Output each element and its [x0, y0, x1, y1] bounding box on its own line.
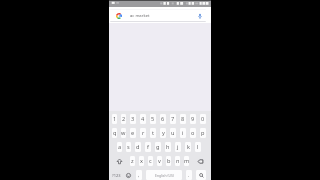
button[interactable]: y	[160, 128, 166, 138]
staticText: r	[142, 129, 145, 137]
button[interactable]: Backspace	[193, 156, 206, 166]
button[interactable]: s	[126, 142, 131, 152]
button[interactable]: h	[165, 142, 171, 152]
button[interactable]: k	[185, 142, 191, 152]
staticText: c	[149, 157, 152, 165]
button[interactable]: Search	[196, 170, 206, 180]
staticText: .	[188, 172, 190, 179]
button[interactable]: t	[150, 128, 156, 138]
staticText: s	[127, 143, 130, 151]
button[interactable]: 1	[112, 114, 117, 124]
staticText: d	[136, 143, 140, 151]
staticText: o	[191, 129, 195, 137]
button[interactable]: 5	[150, 114, 156, 124]
button[interactable]: p	[200, 128, 206, 138]
staticText: l	[197, 143, 199, 151]
staticText: ac market	[130, 13, 150, 19]
staticText: 3	[131, 115, 135, 123]
staticText: w	[121, 129, 126, 137]
staticText: 6	[161, 115, 165, 123]
button[interactable]: o	[190, 128, 196, 138]
staticText: v	[158, 157, 161, 165]
button[interactable]: ?123	[112, 170, 121, 180]
button[interactable]: x	[139, 156, 144, 166]
staticText: 0	[201, 115, 205, 123]
button[interactable]: z	[130, 156, 135, 166]
staticText: x	[140, 157, 143, 165]
staticText: e	[131, 129, 135, 137]
button[interactable]: 6	[160, 114, 166, 124]
button[interactable]: 0	[200, 114, 206, 124]
staticText: u	[171, 129, 175, 137]
button[interactable]: ac market	[110, 9, 206, 22]
button[interactable]: c	[148, 156, 153, 166]
button[interactable]: .	[186, 170, 192, 180]
staticText: y	[162, 129, 165, 137]
staticText: 9	[191, 115, 195, 123]
staticText: 4	[141, 115, 145, 123]
staticText: h	[166, 143, 170, 151]
button[interactable]: ,	[136, 170, 142, 180]
staticText: 7	[171, 115, 175, 123]
staticText: 1	[113, 115, 117, 123]
button[interactable]: f	[145, 142, 151, 152]
button[interactable]: English (US)	[146, 170, 182, 180]
button[interactable]: Shift	[112, 156, 126, 166]
button[interactable]: l	[195, 142, 201, 152]
button[interactable]: 2	[121, 114, 126, 124]
staticText: q	[113, 129, 117, 137]
button[interactable]: i	[180, 128, 186, 138]
button[interactable]: a	[117, 142, 122, 152]
button[interactable]: r	[140, 128, 146, 138]
staticText: 2	[122, 115, 126, 123]
staticText: ?123	[112, 173, 121, 178]
staticText: z	[131, 157, 134, 165]
button[interactable]: q	[112, 128, 117, 138]
staticText: m	[184, 157, 189, 165]
button[interactable]: Emoji	[125, 170, 132, 180]
staticText: g	[156, 143, 160, 151]
button[interactable]: j	[175, 142, 181, 152]
button[interactable]: Voice search	[196, 12, 203, 19]
button[interactable]: b	[166, 156, 171, 166]
button[interactable]: 3	[130, 114, 136, 124]
staticText: b	[167, 157, 171, 165]
staticText: i	[182, 129, 184, 137]
staticText: t	[152, 129, 155, 137]
staticText: k	[187, 143, 190, 151]
staticText: English (US)	[155, 173, 174, 178]
button[interactable]: d	[135, 142, 141, 152]
staticText: p	[201, 129, 205, 137]
button[interactable]: 7	[170, 114, 176, 124]
staticText: 8	[181, 115, 185, 123]
button[interactable]: 4	[140, 114, 146, 124]
staticText: n	[176, 157, 180, 165]
staticText: a	[118, 143, 122, 151]
button[interactable]: 8	[180, 114, 186, 124]
staticText: f	[147, 143, 149, 151]
staticText: 5	[151, 115, 155, 123]
button[interactable]: 9	[190, 114, 196, 124]
staticText: ,	[138, 172, 140, 179]
button[interactable]: u	[170, 128, 176, 138]
button[interactable]: m	[184, 156, 189, 166]
button[interactable]: e	[130, 128, 136, 138]
button[interactable]: w	[121, 128, 126, 138]
button[interactable]: v	[157, 156, 162, 166]
button[interactable]: n	[175, 156, 180, 166]
button[interactable]: g	[155, 142, 161, 152]
staticText: j	[177, 143, 179, 151]
